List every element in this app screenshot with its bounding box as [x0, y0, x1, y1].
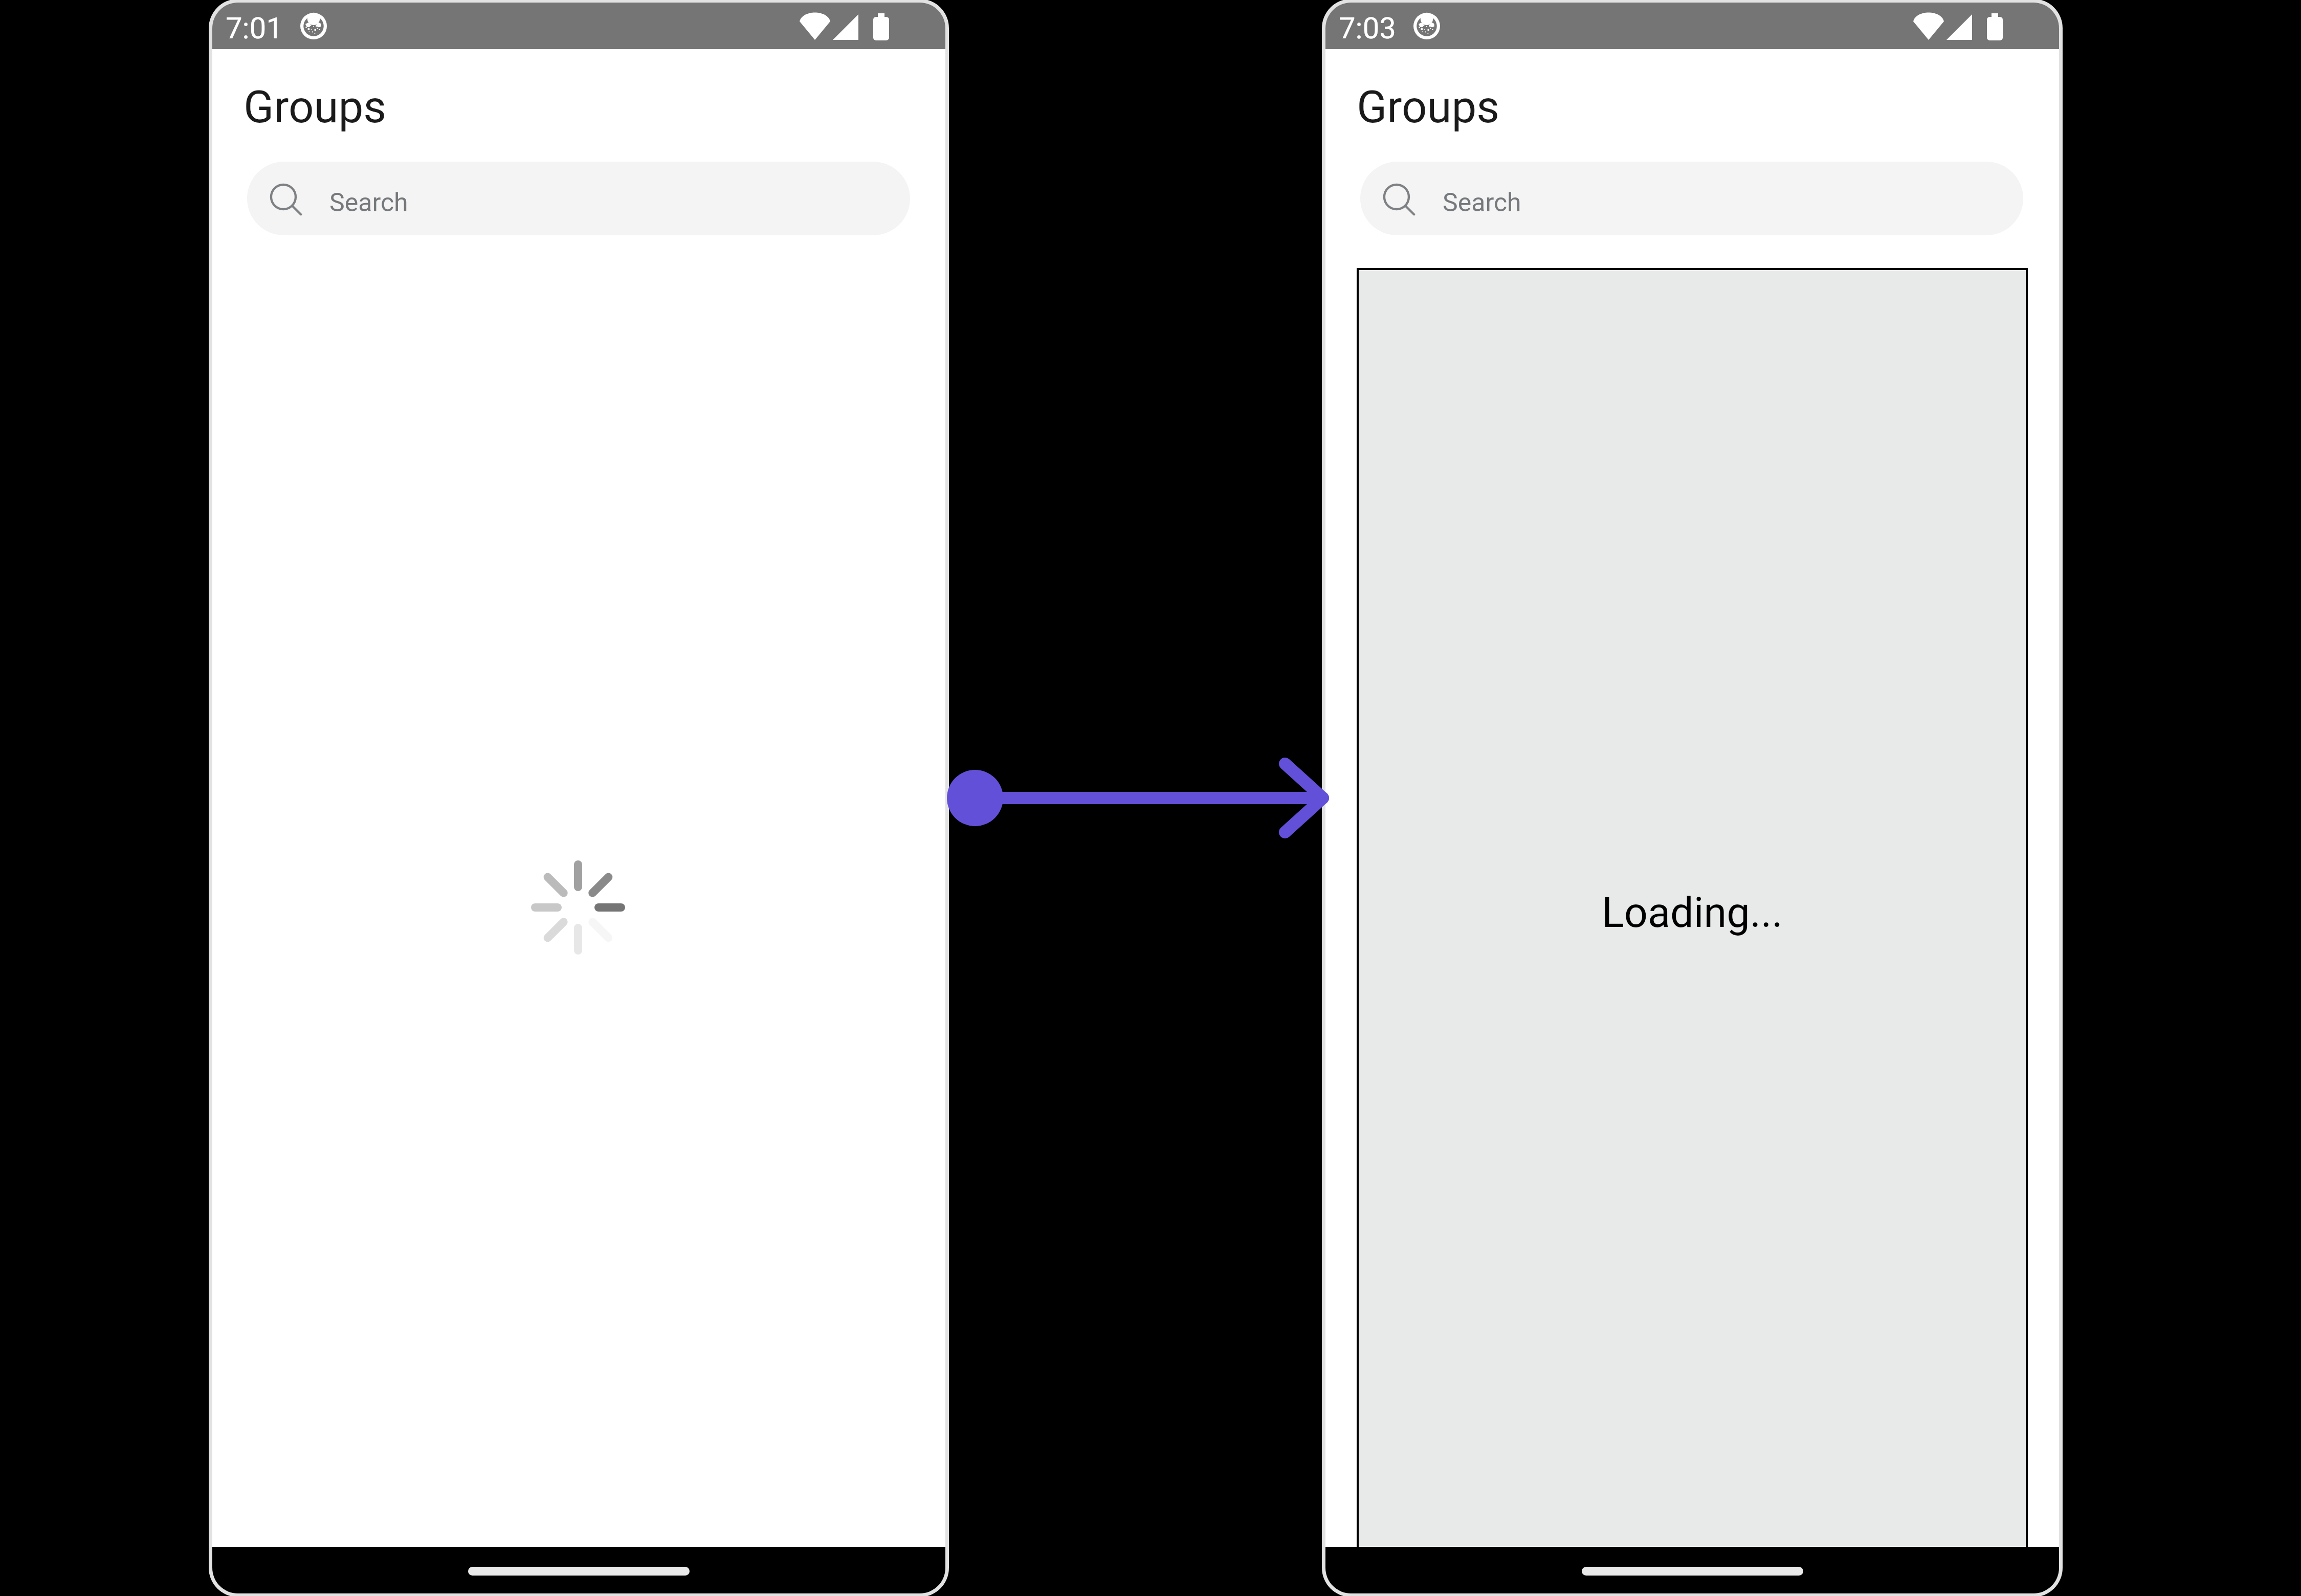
staticText: Groups — [244, 81, 387, 133]
staticText: Loading... — [1602, 889, 1783, 937]
other: Loading — [531, 860, 625, 955]
staticText: 7:03 — [1339, 11, 1396, 46]
staticText: 7:01 — [226, 11, 283, 46]
button[interactable]: Search — [247, 162, 910, 235]
button[interactable]: Home — [468, 1567, 690, 1576]
other: Transition arrow — [947, 758, 1329, 838]
staticText: Search — [329, 188, 408, 218]
staticText: Groups — [1357, 81, 1500, 133]
button[interactable]: Search — [1360, 162, 2023, 235]
staticText: Search — [1443, 188, 1521, 218]
button[interactable]: Home — [1582, 1567, 1803, 1576]
